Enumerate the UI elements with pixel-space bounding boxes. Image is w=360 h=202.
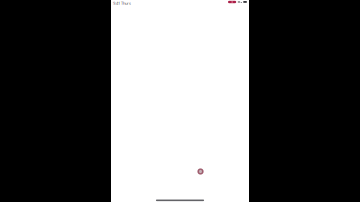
button[interactable]: Record [196, 167, 204, 175]
staticText: 9:41 Thurs [113, 1, 131, 6]
